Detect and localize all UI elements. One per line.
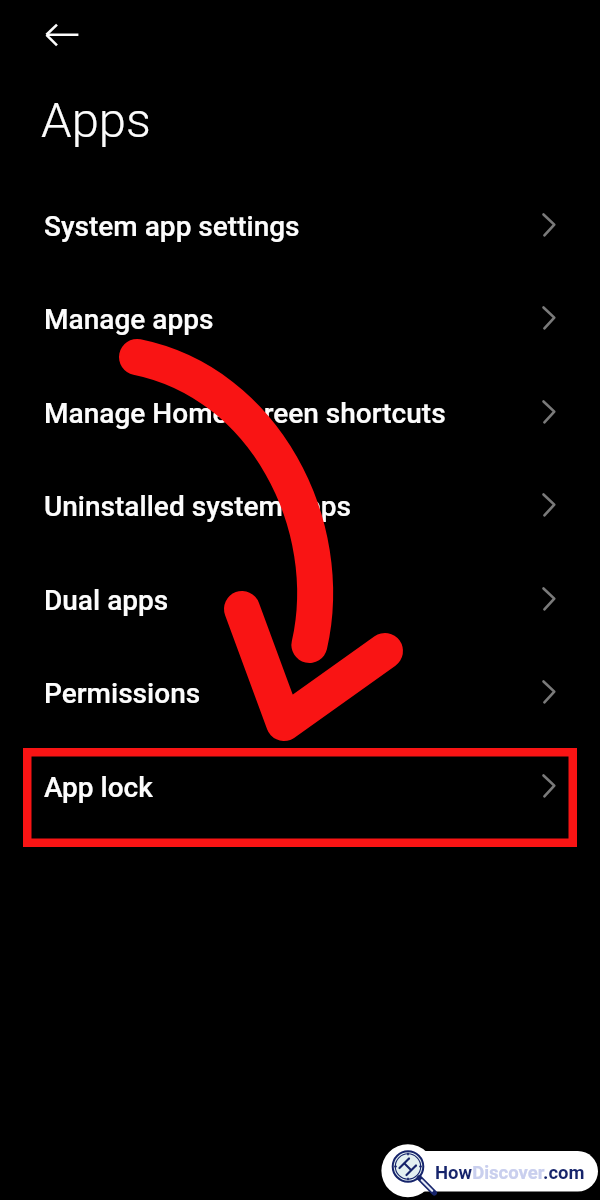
staticText: Permissions [44,677,201,710]
staticText: System app settings [44,210,300,243]
staticText: Manage apps [44,303,214,336]
button[interactable]: Back [22,8,78,64]
button[interactable]: System app settings [0,181,600,275]
staticText: Manage Home screen shortcuts [44,397,446,430]
button[interactable]: Uninstalled system apps [0,461,600,555]
button[interactable]: Dual apps [0,555,600,649]
staticText: Uninstalled system apps [44,490,352,523]
button[interactable]: Permissions [0,648,600,742]
button[interactable]: App lock [0,742,600,836]
button[interactable]: Manage apps [0,274,600,368]
staticText: App lock [44,771,153,804]
staticText: Apps [41,92,151,149]
button[interactable]: Manage Home screen shortcuts [0,368,600,462]
staticText: HowDiscover.com [435,1162,585,1184]
staticText: Dual apps [44,584,169,617]
